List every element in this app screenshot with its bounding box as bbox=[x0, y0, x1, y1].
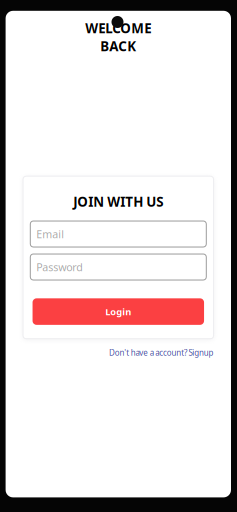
staticText: JOIN WITH US bbox=[73, 193, 163, 210]
staticText: Login bbox=[105, 305, 131, 318]
button[interactable]: Login bbox=[32, 298, 204, 325]
button[interactable]: Don't have a account? Signup bbox=[23, 346, 213, 360]
staticText: Email bbox=[36, 227, 64, 241]
staticText: Password bbox=[36, 260, 83, 274]
staticText: Don't have a account? Signup bbox=[109, 347, 214, 358]
staticText: WELCOME bbox=[85, 19, 151, 37]
staticText: BACK bbox=[100, 37, 136, 55]
